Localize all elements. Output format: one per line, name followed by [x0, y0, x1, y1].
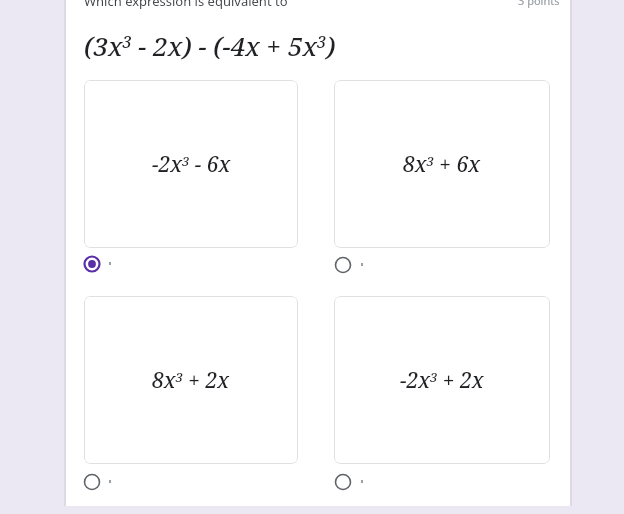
staticText: Which expression is equivalent to: [84, 0, 288, 10]
staticText: −2x3 + 2x: [400, 366, 484, 395]
button[interactable]: Option 3: [77, 467, 107, 497]
staticText: 8x3 + 6x: [403, 150, 481, 179]
button[interactable]: Option 4: [328, 467, 358, 497]
button[interactable]: Option 1 selected: [77, 249, 107, 279]
button[interactable]: 8x3 + 6x: [334, 80, 550, 248]
button[interactable]: 8x3 + 2x: [84, 296, 298, 464]
button[interactable]: −2x3 − 6x: [84, 80, 298, 248]
button[interactable]: Option 2: [328, 250, 358, 280]
staticText: 8x3 + 2x: [152, 366, 230, 395]
staticText: −2x3 − 6x: [152, 150, 231, 179]
staticText: 3 points: [518, 0, 560, 8]
button[interactable]: −2x3 + 2x: [334, 296, 550, 464]
staticText: (3x3 − 2x) − (−4x + 5x3): [84, 28, 336, 63]
